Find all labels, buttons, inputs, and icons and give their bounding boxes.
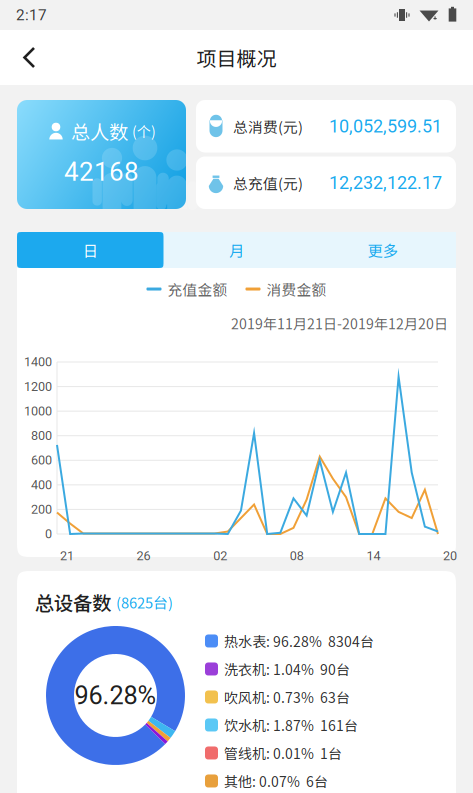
staticText: 吹风机: [224,687,270,707]
button[interactable]: 月 [163,232,309,268]
staticText: 洗衣机: [224,659,270,679]
staticText: 1400 [24,355,52,369]
staticText: 其他: [224,771,256,791]
staticText: 更多 [368,239,398,261]
staticText: 08 [290,549,304,563]
staticText: 20 [443,549,457,563]
button[interactable]: Back [0,30,54,85]
staticText: 14 [366,549,380,563]
staticText: 1.87% 161台 [273,715,358,735]
staticText: (8625台) [116,591,173,613]
staticText: 消费金额 [266,278,326,300]
button[interactable]: 总消费(元) [196,100,456,152]
staticText: 12,232,122.17 [329,172,442,193]
staticText: 42168 [64,156,139,187]
staticText: 21 [60,549,74,563]
staticText: 26 [137,549,151,563]
staticText: 0.01% 1台 [273,743,342,763]
staticText: 200 [31,502,52,517]
staticText: 项目概况 [196,43,276,72]
button[interactable]: 更多 [309,232,456,268]
staticText: 饮水机: [224,715,270,735]
staticText: 管线机: [224,743,270,763]
staticText: 总充值(元) [233,172,303,193]
staticText: 96.28% [74,681,156,710]
staticText: 800 [31,428,52,443]
staticText: 0 [45,527,52,541]
staticText: 热水表: [224,631,270,651]
staticText: 月 [229,239,244,261]
staticText: 2019年11月21日-2019年12月20日 [231,313,448,333]
staticText: 2:17 [16,6,47,24]
staticText: 总设备数 [35,588,111,616]
staticText: 0.73% 63台 [273,687,350,707]
staticText: 0.07% 6台 [259,771,328,791]
staticText: 400 [31,477,52,492]
button[interactable]: 总充值(元) [196,156,456,209]
button[interactable]: 日 [17,232,163,268]
staticText: 充值金额 [167,278,227,300]
staticText: 总消费(元) [233,116,303,137]
staticText: 02 [213,549,227,563]
staticText: 600 [31,453,52,468]
staticText: 1000 [24,404,52,418]
staticText: (个) [132,121,156,141]
staticText: 10,052,599.51 [329,116,442,137]
staticText: 1.04% 90台 [273,659,350,679]
staticText: 总人数 [71,117,128,145]
staticText: 日 [83,239,98,261]
staticText: 96.28% 8304台 [273,631,374,651]
staticText: 1200 [24,379,52,394]
